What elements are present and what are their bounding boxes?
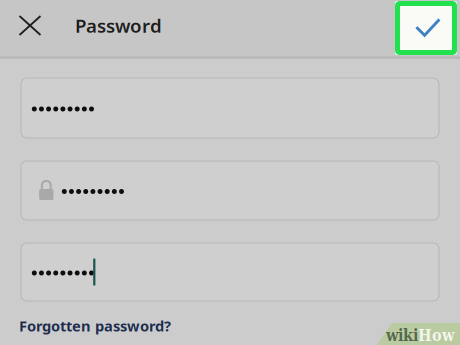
button[interactable]: Confirm xyxy=(395,1,457,55)
staticText: wiki xyxy=(386,326,418,345)
button[interactable]: Close xyxy=(8,3,52,47)
staticText: Password xyxy=(75,13,162,38)
button[interactable]: Forgotten password? xyxy=(19,316,171,335)
staticText: Forgotten password? xyxy=(19,316,171,335)
staticText: How xyxy=(418,326,454,345)
